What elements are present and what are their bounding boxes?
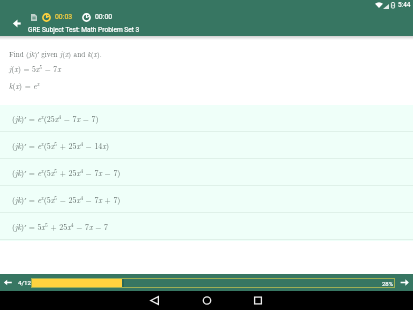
button[interactable]: Back xyxy=(143,291,167,310)
staticText: (jk)′ = 5x5 + 25x4 − 7x − 7 xyxy=(12,221,108,232)
staticText: 5:44 xyxy=(398,1,411,9)
staticText: (jk)′ = ex(5x5 + 25x4 − 14x) xyxy=(12,140,110,151)
staticText: (jk)′ = ex(25x4 − 7x − 7) xyxy=(12,113,99,124)
button[interactable]: (jk)′ = 5x5 + 25x4 − 7x − 7 xyxy=(0,213,413,240)
button[interactable]: (jk)′ = ex(5x5 + 25x4 − 14x) xyxy=(0,132,413,159)
button[interactable]: Next question xyxy=(400,277,410,288)
staticText: GRE Subject Test: Math Problem Set 3 xyxy=(28,26,140,34)
button[interactable]: Previous question xyxy=(3,277,13,288)
staticText: 4/12 xyxy=(18,279,31,286)
staticText: 00:00 xyxy=(95,13,113,21)
staticText: j(x) = 5x5 − 7x xyxy=(9,63,61,74)
button[interactable]: Recent apps xyxy=(246,291,270,310)
staticText: 00:03 xyxy=(55,13,73,21)
button[interactable]: (jk)′ = ex(5x5 − 25x4 − 7x + 7) xyxy=(0,186,413,213)
staticText: k(x) = ex xyxy=(9,80,40,91)
staticText: (jk)′ = ex(5x5 − 25x4 − 7x + 7) xyxy=(12,194,121,205)
button[interactable]: (jk)′ = ex(5x5 + 25x4 − 7x − 7) xyxy=(0,159,413,186)
button[interactable]: (jk)′ = ex(25x4 − 7x − 7) xyxy=(0,105,413,132)
staticText: Find (jk)′ given j(x) and k(x). xyxy=(9,49,102,59)
staticText: 28% xyxy=(382,280,394,287)
staticText: (jk)′ = ex(5x5 + 25x4 − 7x − 7) xyxy=(12,167,121,178)
button[interactable]: Back xyxy=(10,16,25,31)
button[interactable]: Home xyxy=(195,291,219,310)
